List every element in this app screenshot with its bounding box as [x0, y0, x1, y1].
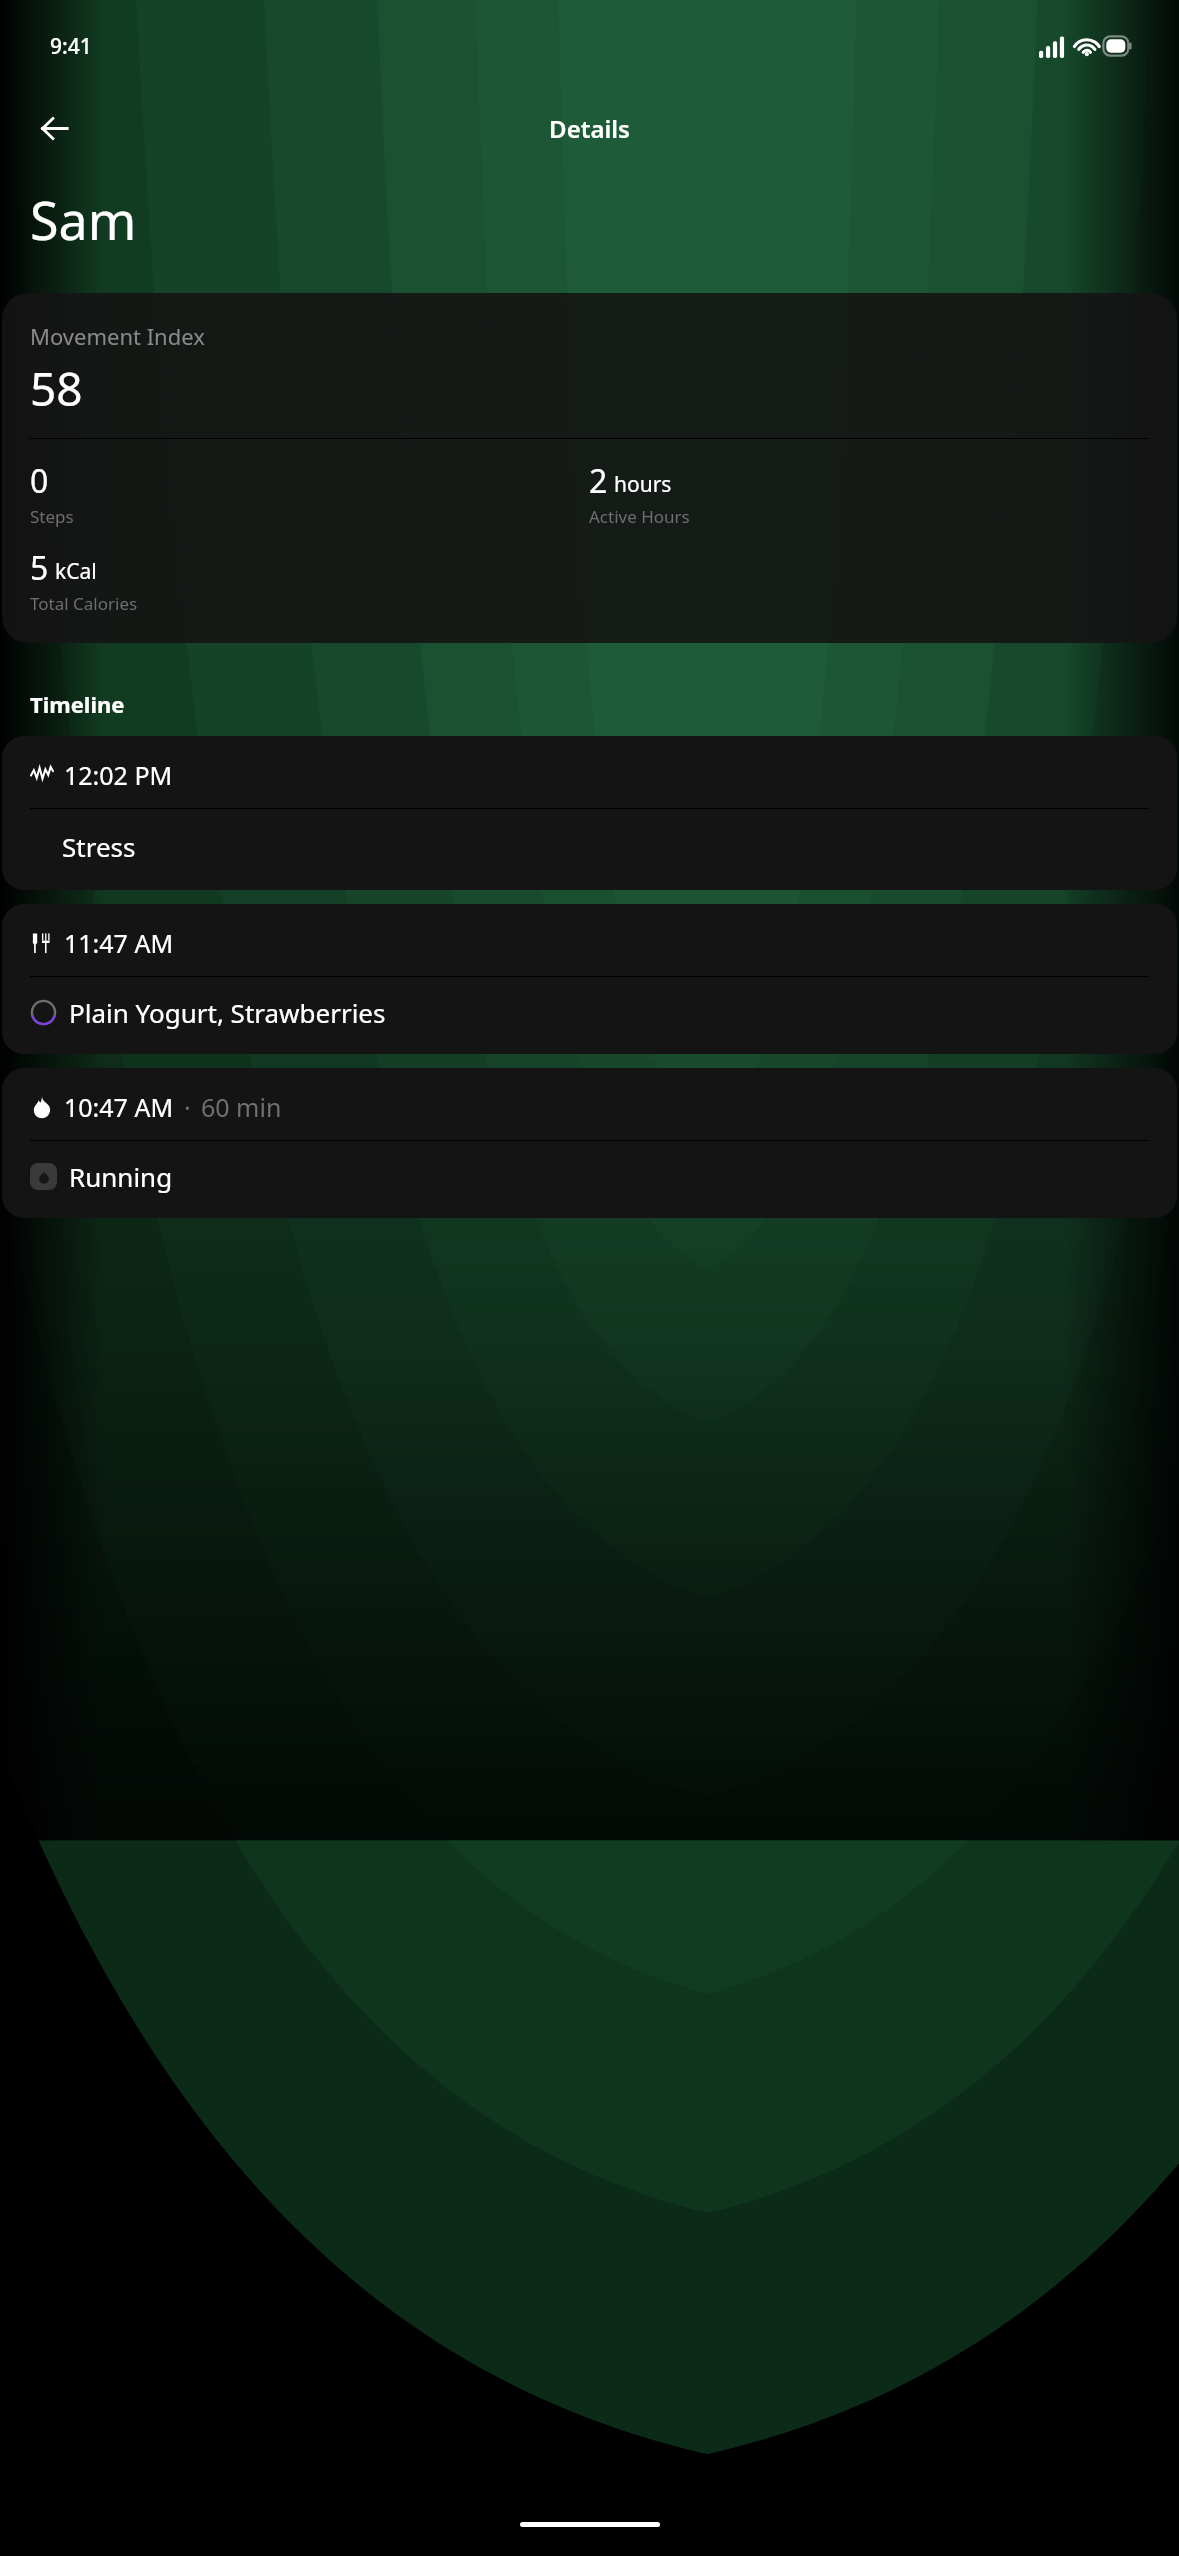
- staticText: 0: [30, 459, 49, 503]
- staticText: Steps: [30, 505, 74, 528]
- staticText: Stress: [62, 829, 136, 864]
- staticText: kCal: [55, 557, 97, 586]
- staticText: 12:02 PM: [64, 758, 173, 792]
- staticText: Total Calories: [30, 592, 138, 615]
- button[interactable]: 11:47 AM: [2, 904, 1177, 1054]
- staticText: Movement Index: [30, 321, 205, 351]
- staticText: Active Hours: [589, 505, 690, 528]
- staticText: Sam: [30, 184, 137, 255]
- staticText: Plain Yogurt, Strawberries: [69, 995, 386, 1030]
- button[interactable]: 12:02 PM: [2, 736, 1177, 890]
- staticText: Running: [69, 1159, 173, 1194]
- staticText: ·: [184, 1090, 191, 1124]
- staticText: 5: [30, 546, 49, 590]
- staticText: 10:47 AM: [64, 1090, 174, 1124]
- staticText: 60 min: [201, 1090, 282, 1124]
- staticText: 58: [30, 357, 83, 420]
- button[interactable]: Back: [26, 100, 82, 156]
- staticText: 9:41: [50, 32, 92, 61]
- staticText: hours: [614, 470, 672, 499]
- staticText: 2: [589, 459, 608, 503]
- staticText: 11:47 AM: [64, 926, 174, 960]
- staticText: Details: [549, 112, 630, 145]
- button[interactable]: 10:47 AM: [2, 1068, 1177, 1218]
- staticText: Timeline: [30, 689, 125, 719]
- button[interactable]: Movement Index: [2, 293, 1177, 643]
